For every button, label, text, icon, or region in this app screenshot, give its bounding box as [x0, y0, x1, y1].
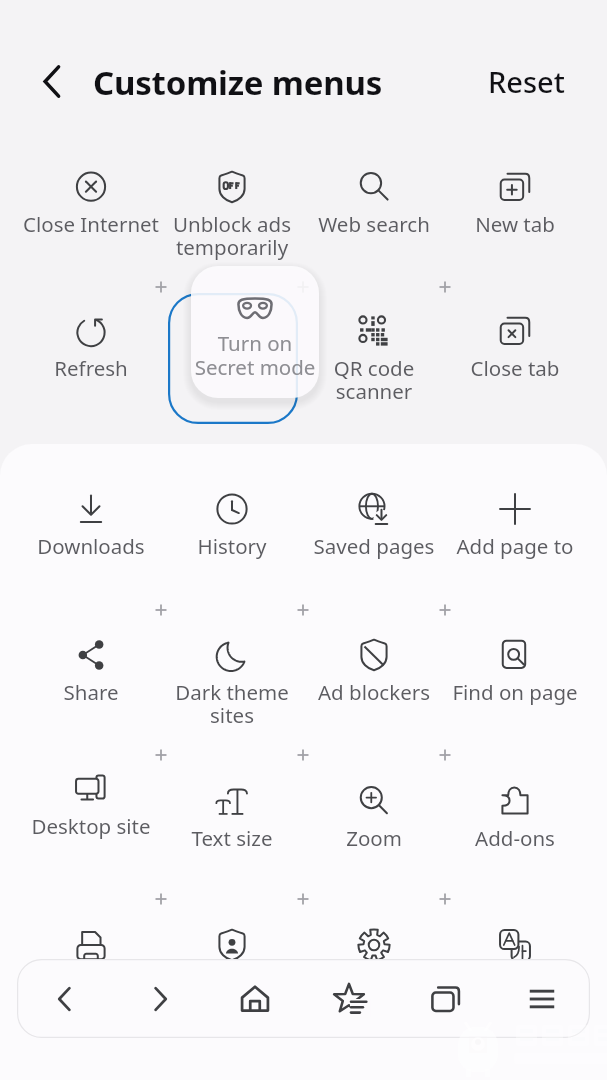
- button[interactable]: History: [162, 478, 302, 590]
- button[interactable]: Web search: [304, 156, 444, 268]
- button[interactable]: Downloads: [21, 478, 161, 590]
- button[interactable]: New tab: [445, 156, 585, 268]
- button[interactable]: Close Internet: [21, 156, 161, 268]
- staticText: Zoom: [304, 824, 444, 852]
- staticText: Downloads: [21, 532, 161, 560]
- button[interactable]: Saved pages: [304, 478, 444, 590]
- staticText: Close Internet: [21, 210, 161, 238]
- button[interactable]: Text size: [162, 770, 302, 882]
- staticText: Turn on Secret mode: [191, 329, 319, 381]
- staticText: Add-ons: [445, 824, 585, 852]
- button[interactable]: Refresh: [21, 300, 161, 412]
- button[interactable]: Add page to: [445, 478, 585, 590]
- button[interactable]: [21, 914, 161, 1026]
- button[interactable]: Add-ons: [445, 770, 585, 882]
- staticText: Web search: [304, 210, 444, 238]
- button[interactable]: Tabs: [398, 959, 494, 1038]
- staticText: Dark theme sites: [162, 678, 302, 729]
- button[interactable]: Turn on Secret mode: [191, 266, 319, 398]
- staticText: New tab: [445, 210, 585, 238]
- button[interactable]: Close tab: [445, 300, 585, 412]
- button[interactable]: [304, 914, 444, 1026]
- button[interactable]: Reset: [478, 54, 575, 109]
- button[interactable]: Navigate up: [28, 59, 73, 104]
- staticText: Text size: [162, 824, 302, 852]
- staticText: Unblock ads temporarily: [162, 210, 302, 261]
- button[interactable]: Share: [21, 624, 161, 736]
- button[interactable]: Unblock ads temporarily: [162, 156, 302, 268]
- staticText: History: [162, 532, 302, 560]
- button[interactable]: Forward: [112, 959, 207, 1038]
- staticText: Desktop site: [21, 812, 161, 840]
- staticText: Share: [21, 678, 161, 706]
- button[interactable]: Find on page: [445, 624, 585, 736]
- button[interactable]: Ad blockers: [304, 624, 444, 736]
- staticText: QR code scanner: [304, 354, 444, 405]
- staticText: Find on page: [445, 678, 585, 706]
- staticText: Customize menus: [93, 60, 383, 105]
- button[interactable]: Dark theme sites: [162, 624, 302, 736]
- staticText: Reset: [488, 62, 565, 101]
- button[interactable]: QR code scanner: [304, 300, 444, 412]
- button[interactable]: Zoom: [304, 770, 444, 882]
- staticText: Add page to: [445, 532, 585, 560]
- staticText: Saved pages: [304, 532, 444, 560]
- button[interactable]: Desktop site: [21, 758, 161, 870]
- button[interactable]: [162, 914, 302, 1026]
- button[interactable]: [445, 914, 585, 1026]
- staticText: Ad blockers: [304, 678, 444, 706]
- button[interactable]: Menu: [494, 959, 590, 1038]
- button[interactable]: Home: [207, 959, 302, 1038]
- staticText: Close tab: [445, 354, 585, 382]
- button[interactable]: Bookmarks: [302, 959, 398, 1038]
- staticText: Refresh: [21, 354, 161, 382]
- button[interactable]: Back: [17, 959, 112, 1038]
